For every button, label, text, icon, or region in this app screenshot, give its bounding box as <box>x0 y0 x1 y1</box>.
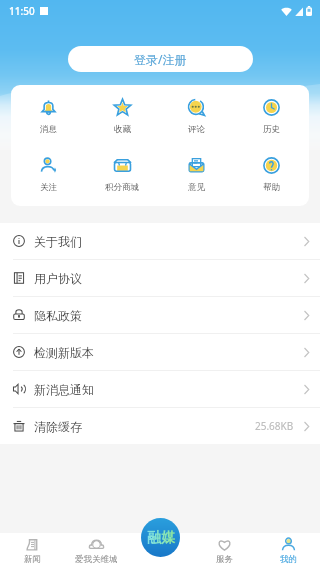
staticText: 我的 <box>280 554 297 565</box>
button[interactable]: 关于我们 <box>0 223 320 259</box>
button[interactable]: 清除缓存 <box>0 408 320 444</box>
staticText: 融媒 <box>147 529 175 547</box>
staticText: 检测新版本 <box>34 345 94 360</box>
button[interactable]: 意见 <box>159 156 234 193</box>
staticText: 评论 <box>188 124 205 135</box>
staticText: 消息 <box>40 124 57 135</box>
button[interactable]: 评论 <box>159 98 234 135</box>
staticText: 关于我们 <box>34 234 82 249</box>
button[interactable]: 服务 <box>192 533 256 568</box>
staticText: 关注 <box>40 182 57 193</box>
staticText: 收藏 <box>114 124 131 135</box>
staticText: 历史 <box>263 124 280 135</box>
staticText: 爱我关维城 <box>75 554 118 565</box>
button[interactable]: 隐私政策 <box>0 297 320 333</box>
staticText: 新消息通知 <box>34 382 94 397</box>
button[interactable]: Home <box>141 518 180 557</box>
button[interactable]: 新消息通知 <box>0 371 320 407</box>
staticText: 帮助 <box>263 182 280 193</box>
staticText: 新闻 <box>24 554 41 565</box>
button[interactable]: 积分商城 <box>85 156 159 193</box>
staticText: 清除缓存 <box>34 419 82 434</box>
staticText: 积分商城 <box>105 182 139 193</box>
staticText: 意见 <box>188 182 205 193</box>
staticText: 11:50 <box>9 4 35 18</box>
button[interactable]: 用户协议 <box>0 260 320 296</box>
staticText: 25.68KB <box>255 419 294 433</box>
button[interactable]: 我的 <box>256 533 320 568</box>
button[interactable]: 帮助 <box>234 156 309 193</box>
button[interactable]: 历史 <box>234 98 309 135</box>
staticText: 隐私政策 <box>34 308 82 323</box>
staticText: 服务 <box>216 554 233 565</box>
button[interactable]: 收藏 <box>85 98 159 135</box>
button[interactable]: 新闻 <box>0 533 64 568</box>
button[interactable]: 消息 <box>11 98 85 135</box>
button[interactable]: 爱我关维城 <box>64 533 128 568</box>
button[interactable]: 关注 <box>11 156 85 193</box>
staticText: 登录/注册 <box>134 51 187 67</box>
staticText: 用户协议 <box>34 271 82 286</box>
button[interactable]: 检测新版本 <box>0 334 320 370</box>
button[interactable]: 登录/注册 <box>68 46 253 72</box>
